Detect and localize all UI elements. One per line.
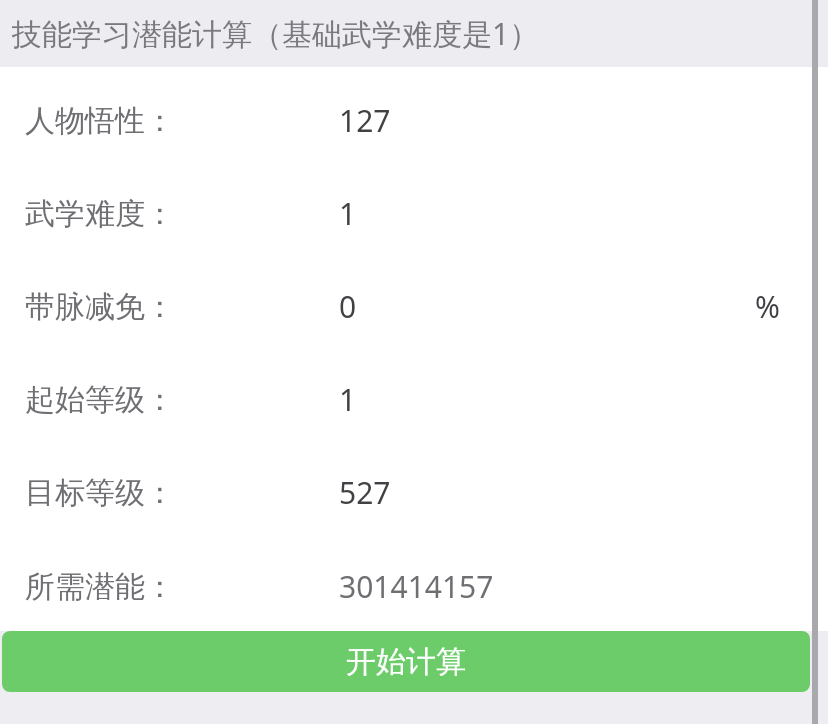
- staticText: 0: [339, 286, 357, 327]
- button[interactable]: 开始计算: [2, 631, 810, 692]
- button[interactable]: 起始等级：: [0, 353, 828, 446]
- button[interactable]: 武学难度：: [0, 167, 828, 260]
- staticText: 开始计算: [346, 643, 466, 681]
- staticText: 527: [339, 472, 391, 513]
- staticText: 1: [339, 379, 357, 420]
- staticText: 301414157: [339, 566, 494, 607]
- button[interactable]: 人物悟性：: [0, 74, 828, 167]
- staticText: 技能学习潜能计算（基础武学难度是1）: [12, 13, 540, 54]
- button[interactable]: 所需潜能：: [0, 540, 828, 633]
- staticText: 武学难度：: [25, 195, 175, 233]
- staticText: 带脉减免：: [25, 288, 175, 326]
- button[interactable]: 目标等级：: [0, 446, 828, 539]
- staticText: 所需潜能：: [25, 568, 175, 606]
- staticText: 起始等级：: [25, 381, 175, 419]
- staticText: 1: [339, 193, 357, 234]
- staticText: 目标等级：: [25, 474, 175, 512]
- staticText: %: [755, 286, 780, 327]
- button[interactable]: 带脉减免：: [0, 260, 828, 353]
- staticText: 人物悟性：: [25, 102, 175, 140]
- staticText: 127: [339, 100, 391, 141]
